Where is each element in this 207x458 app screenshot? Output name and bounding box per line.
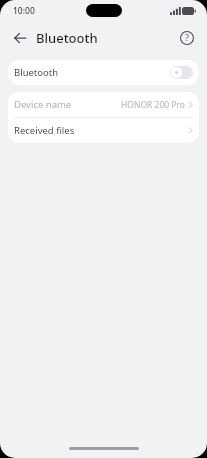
button[interactable]: Back (8, 26, 32, 50)
staticText: Bluetooth (14, 66, 59, 79)
staticText: Device name (14, 98, 72, 111)
button[interactable] (170, 66, 193, 79)
button[interactable]: Help (175, 26, 199, 50)
staticText: ? (185, 32, 189, 44)
staticText: HONOR 200 Pro (121, 99, 185, 111)
staticText: Bluetooth (36, 29, 98, 47)
staticText: 10:00 (13, 5, 35, 17)
button[interactable]: Received files (8, 118, 199, 143)
button[interactable]: Device name (8, 92, 199, 117)
button[interactable]: Bluetooth (8, 60, 199, 85)
staticText: Received files (14, 124, 75, 137)
